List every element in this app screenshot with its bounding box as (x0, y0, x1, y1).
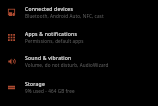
button[interactable]: Storage (0, 75, 158, 100)
staticText: Connected devices (25, 6, 74, 13)
button[interactable]: Sound & vibration (0, 49, 158, 74)
button[interactable]: Apps & notifications (0, 25, 158, 50)
staticText: Permissions, default apps (25, 38, 84, 44)
button[interactable]: Connected devices (0, 0, 158, 25)
staticText: Storage (25, 81, 45, 88)
staticText: Volume, do not disturb, AudioWizard (25, 62, 109, 68)
staticText: Sound & vibration (25, 55, 72, 62)
staticText: 9% used - 464 GB free (25, 88, 75, 94)
staticText: Apps & notifications (25, 31, 78, 38)
staticText: Bluetooth, Android Auto, NFC, cast (25, 13, 104, 19)
